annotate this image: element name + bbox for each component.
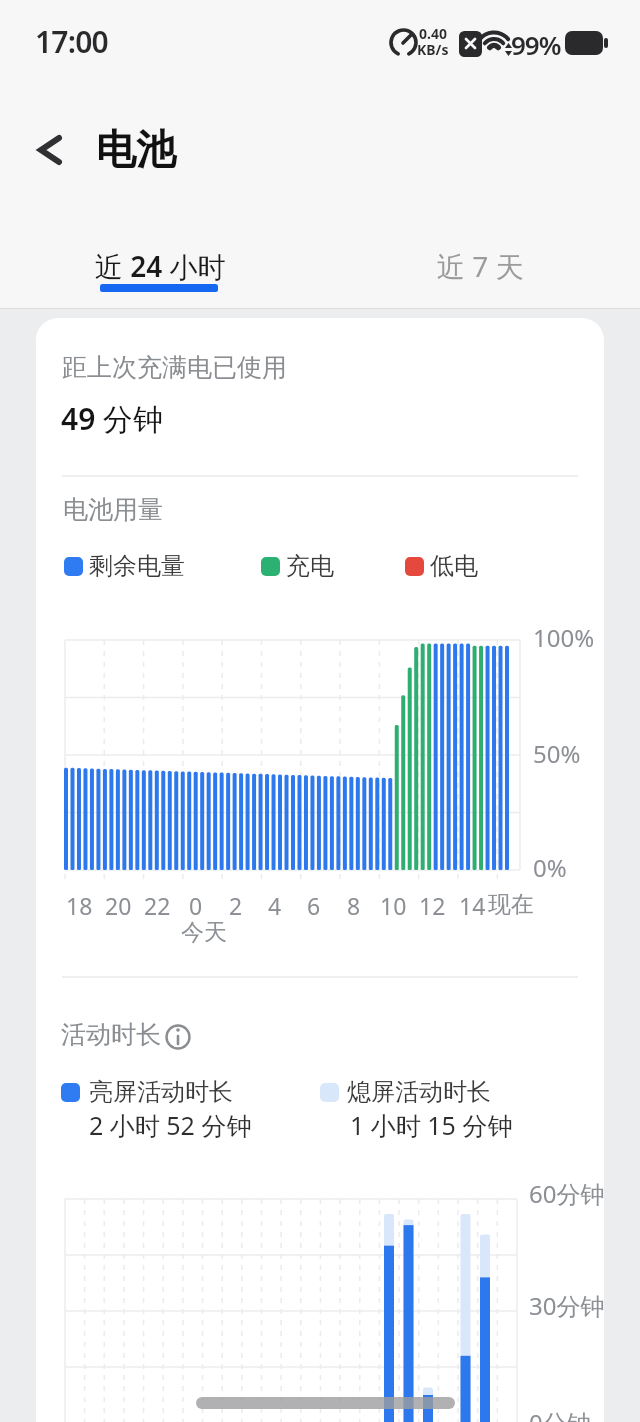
staticText: 0.40 xyxy=(419,24,447,43)
staticText: 电池用量 xyxy=(63,494,163,525)
staticText: 0% xyxy=(533,851,567,884)
staticText: 低电 xyxy=(430,551,478,581)
staticText: 14 xyxy=(459,890,486,921)
staticText: 充电 xyxy=(286,551,334,581)
staticText: 熄屏活动时长 xyxy=(347,1077,491,1107)
staticText: 49 分钟 xyxy=(61,398,164,439)
staticText: 6 xyxy=(307,890,321,921)
staticText: 10 xyxy=(380,890,407,921)
staticText: 0 xyxy=(189,890,203,921)
staticText: 剩余电量 xyxy=(89,551,185,581)
staticText: 50% xyxy=(533,737,581,770)
staticText: 0分钟 xyxy=(529,1406,591,1422)
staticText: 60分钟 xyxy=(529,1177,605,1210)
staticText: 1 小时 15 分钟 xyxy=(350,1108,513,1142)
staticText: 17:00 xyxy=(35,21,108,62)
button[interactable] xyxy=(162,1023,190,1051)
staticText: 30分钟 xyxy=(529,1289,605,1322)
staticText: 距上次充满电已使用 xyxy=(62,352,287,383)
staticText: 12 xyxy=(419,890,446,921)
staticText: 8 xyxy=(347,890,361,921)
staticText: 20 xyxy=(105,890,132,921)
staticText: 电池 xyxy=(96,124,176,174)
staticText: 今天 xyxy=(181,918,227,947)
button[interactable]: 近 24 小时 xyxy=(90,238,230,294)
staticText: 现在 xyxy=(488,890,534,919)
button[interactable]: 近 7 天 xyxy=(420,238,540,294)
staticText: 近 24 小时 xyxy=(95,247,226,285)
staticText: 100% xyxy=(533,621,595,654)
staticText: 4 xyxy=(268,890,282,921)
staticText: 2 xyxy=(229,890,243,921)
staticText: 近 7 天 xyxy=(437,247,524,285)
staticText: 18 xyxy=(66,890,93,921)
staticText: 亮屏活动时长 xyxy=(89,1077,233,1107)
staticText: KB/s xyxy=(417,40,449,59)
staticText: 2 小时 52 分钟 xyxy=(89,1108,252,1142)
button[interactable] xyxy=(26,126,74,174)
staticText: 22 xyxy=(144,890,171,921)
staticText: 活动时长 xyxy=(61,1019,161,1050)
staticText: 99% xyxy=(511,27,561,62)
